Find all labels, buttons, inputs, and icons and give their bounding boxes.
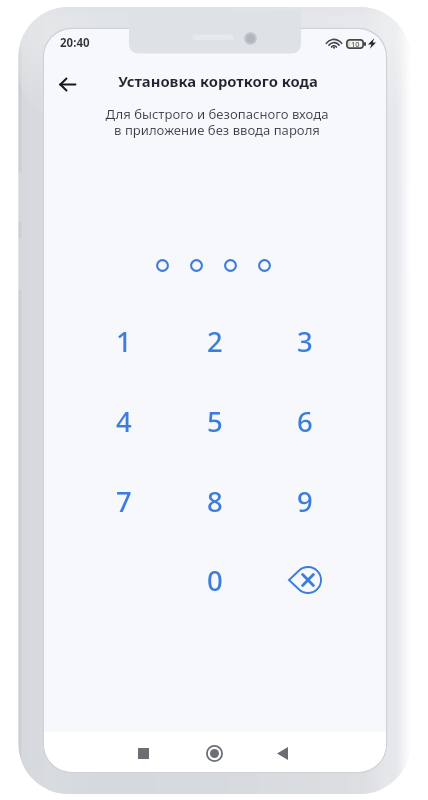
button[interactable]: 1 <box>98 315 150 367</box>
button[interactable]: Back <box>267 738 298 769</box>
staticText: 2 <box>207 323 223 360</box>
button[interactable]: Delete <box>279 554 331 606</box>
button[interactable]: Home <box>199 738 230 769</box>
staticText: 10 <box>351 39 360 49</box>
staticText: Для быстрого и безопасного входа в прило… <box>62 105 372 139</box>
staticText: 0 <box>207 562 223 599</box>
button[interactable]: 8 <box>189 475 241 527</box>
button[interactable]: 0 <box>189 554 241 606</box>
button[interactable]: 9 <box>279 475 331 527</box>
staticText: Установка короткого кода <box>118 71 318 91</box>
staticText: 5 <box>207 403 223 440</box>
staticText: 8 <box>207 483 223 520</box>
staticText: 7 <box>116 483 132 520</box>
button[interactable]: 3 <box>279 315 331 367</box>
button[interactable]: 2 <box>189 315 241 367</box>
button[interactable]: 5 <box>189 395 241 447</box>
button[interactable]: 7 <box>98 475 150 527</box>
button[interactable]: 6 <box>279 395 331 447</box>
staticText: 1 <box>116 323 132 360</box>
button[interactable]: Back <box>49 69 85 99</box>
button[interactable]: 4 <box>98 395 150 447</box>
staticText: 9 <box>297 483 313 520</box>
staticText: 4 <box>116 403 132 440</box>
staticText: 20:40 <box>60 35 90 51</box>
staticText: 6 <box>297 403 313 440</box>
button[interactable]: Recent apps <box>128 738 159 769</box>
staticText: 3 <box>297 323 313 360</box>
